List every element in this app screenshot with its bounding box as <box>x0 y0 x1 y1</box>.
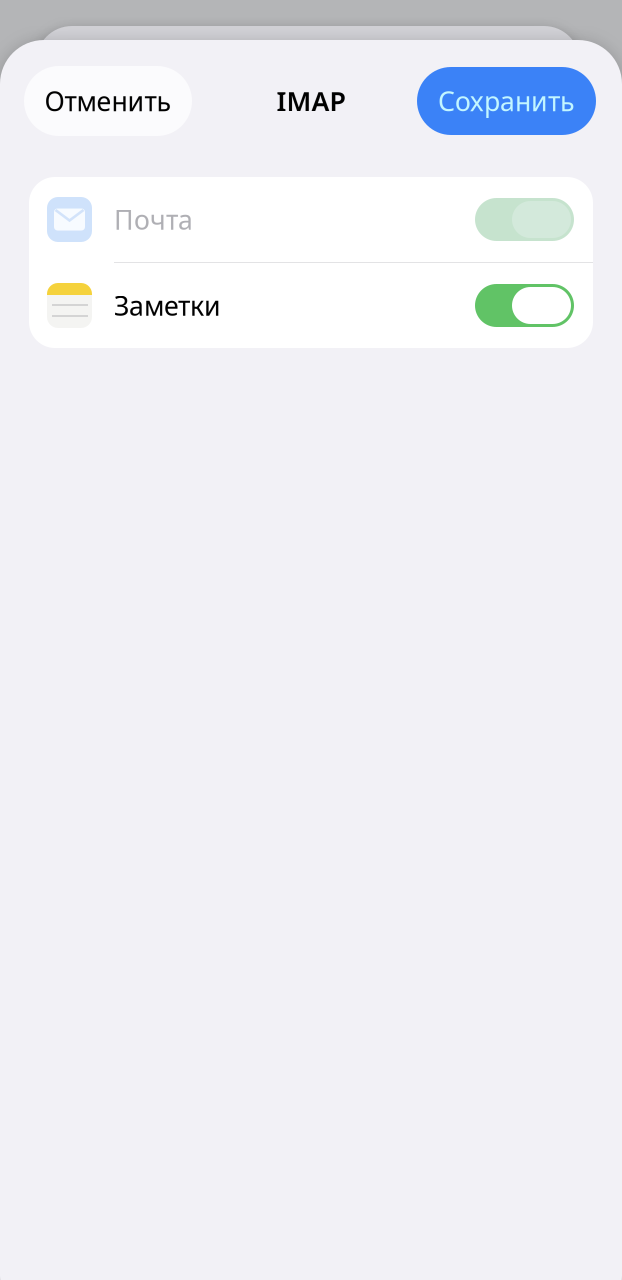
button[interactable]: Почта <box>29 177 593 262</box>
button[interactable]: Сохранить <box>417 67 596 135</box>
staticText: Отменить <box>44 83 171 119</box>
button[interactable]: Заметки <box>29 263 593 348</box>
staticText: IMAP <box>276 83 345 119</box>
staticText: Заметки <box>114 288 221 323</box>
button[interactable]: Отменить <box>24 66 192 136</box>
staticText: Сохранить <box>438 83 575 119</box>
staticText: Почта <box>114 202 193 237</box>
